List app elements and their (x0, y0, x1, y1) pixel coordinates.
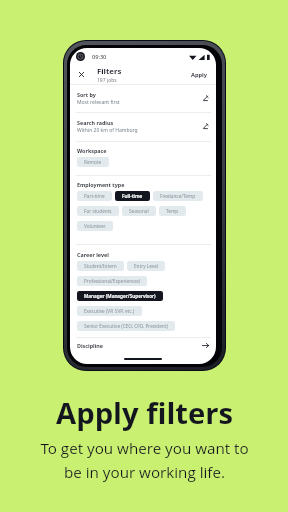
button[interactable]: Seasonal (122, 206, 156, 216)
staticText: Career level (77, 251, 109, 258)
staticText: To get you where you want to be in your … (40, 438, 249, 483)
staticText: For students (84, 208, 112, 214)
staticText: Entry Level (134, 263, 158, 269)
staticText: Apply (191, 71, 208, 79)
button[interactable]: Temp (159, 206, 186, 216)
staticText: Seasonal (129, 208, 149, 214)
staticText: Temp (166, 208, 179, 214)
button[interactable]: Sort by (70, 85, 216, 112)
button[interactable]: Edit (202, 123, 209, 130)
staticText: Sort by (77, 91, 96, 98)
button[interactable]: Manager (Manager/Supervisor) (77, 291, 163, 301)
button[interactable]: Part-time (77, 191, 112, 201)
staticText: Employment type (77, 181, 125, 188)
button[interactable]: Search radius (70, 113, 216, 141)
button[interactable]: For students (77, 206, 119, 216)
staticText: Remote (84, 159, 102, 165)
button[interactable]: Executive (VP, SVP, etc.) (77, 306, 142, 316)
staticText: Full-time (122, 193, 143, 199)
staticText: Most relevant first (77, 99, 120, 106)
staticText: 197 jobs (97, 77, 117, 84)
staticText: Filters (97, 66, 122, 77)
button[interactable]: Entry Level (127, 261, 165, 271)
button[interactable]: Senior Executive (CEO, CFO, President) (77, 321, 175, 331)
button[interactable]: Remote (77, 157, 109, 167)
button[interactable]: Discipline (70, 338, 216, 353)
button[interactable]: Student/Intern (77, 261, 124, 271)
button[interactable]: Freelance/Temp (153, 191, 203, 201)
staticText: Student/Intern (84, 263, 117, 269)
staticText: Volunteer (84, 223, 106, 229)
staticText: Executive (VP, SVP, etc.) (84, 308, 135, 314)
button[interactable]: Edit (202, 95, 209, 102)
staticText: 09:30 (92, 53, 107, 61)
staticText: Freelance/Temp (160, 193, 196, 199)
button[interactable]: Professional/Experienced (77, 276, 147, 286)
staticText: Professional/Experienced (84, 278, 140, 284)
button[interactable]: Volunteer (77, 221, 113, 231)
button[interactable]: Apply (190, 69, 209, 81)
staticText: Discipline (77, 342, 104, 349)
button[interactable]: Close (76, 69, 87, 80)
other: Open discipline (202, 342, 209, 349)
staticText: Workspace (77, 147, 107, 154)
staticText: Manager (Manager/Supervisor) (84, 293, 156, 299)
staticText: Senior Executive (CEO, CFO, President) (84, 323, 168, 329)
button[interactable]: Full-time (115, 191, 150, 201)
staticText: Apply filters (56, 393, 233, 433)
staticText: Within 20 km of Hamburg (77, 127, 138, 134)
staticText: Search radius (77, 119, 114, 126)
staticText: Part-time (84, 193, 105, 199)
